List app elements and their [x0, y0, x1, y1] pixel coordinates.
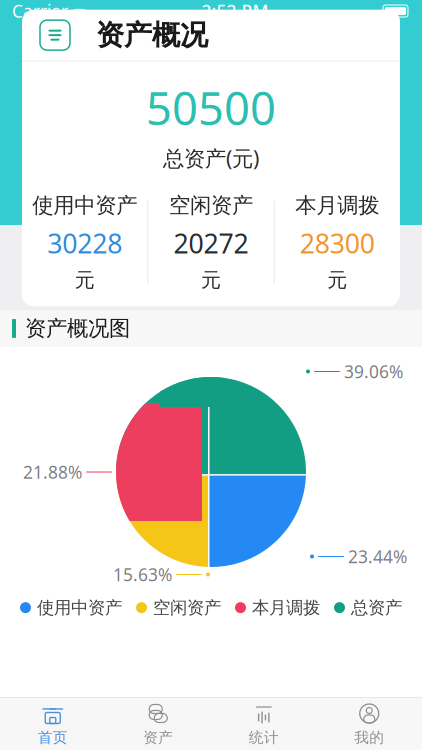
staticText: 15.63%	[113, 563, 172, 586]
staticText: 使用中资产	[37, 597, 122, 618]
staticText: 30228	[47, 225, 122, 261]
staticText: 本月调拨	[295, 192, 379, 218]
staticText: 23.44%	[348, 545, 407, 568]
staticText: Carrier	[12, 0, 68, 22]
staticText: 首页	[38, 728, 68, 746]
staticText: 元	[201, 268, 221, 292]
staticText: 元	[75, 268, 95, 292]
button[interactable]: 首页	[0, 695, 105, 750]
staticText: 50500	[146, 78, 276, 138]
staticText: ᯤ	[68, 0, 87, 22]
staticText: 资产	[143, 728, 173, 746]
staticText: 我的	[354, 728, 384, 746]
staticText: 空闲资产	[169, 192, 253, 218]
button[interactable]: 统计	[211, 695, 316, 750]
staticText: 空闲资产	[153, 597, 221, 618]
staticText: 统计	[249, 728, 279, 746]
staticText: 总资产	[351, 597, 402, 618]
staticText: 总资产(元)	[163, 144, 259, 172]
staticText: 元	[327, 268, 347, 292]
button[interactable]: 我的	[316, 695, 422, 750]
staticText: 39.06%	[344, 360, 403, 383]
staticText: 资产概况	[96, 18, 208, 52]
staticText: 28300	[300, 225, 375, 261]
staticText: 21.88%	[23, 460, 82, 483]
staticText: 20272	[173, 225, 248, 261]
staticText: 2:52 PM	[201, 0, 268, 22]
button[interactable]: 资产	[105, 695, 211, 750]
staticText: 使用中资产	[32, 192, 137, 218]
staticText: 资产概况图	[25, 315, 130, 342]
staticText: 本月调拨	[252, 597, 320, 618]
